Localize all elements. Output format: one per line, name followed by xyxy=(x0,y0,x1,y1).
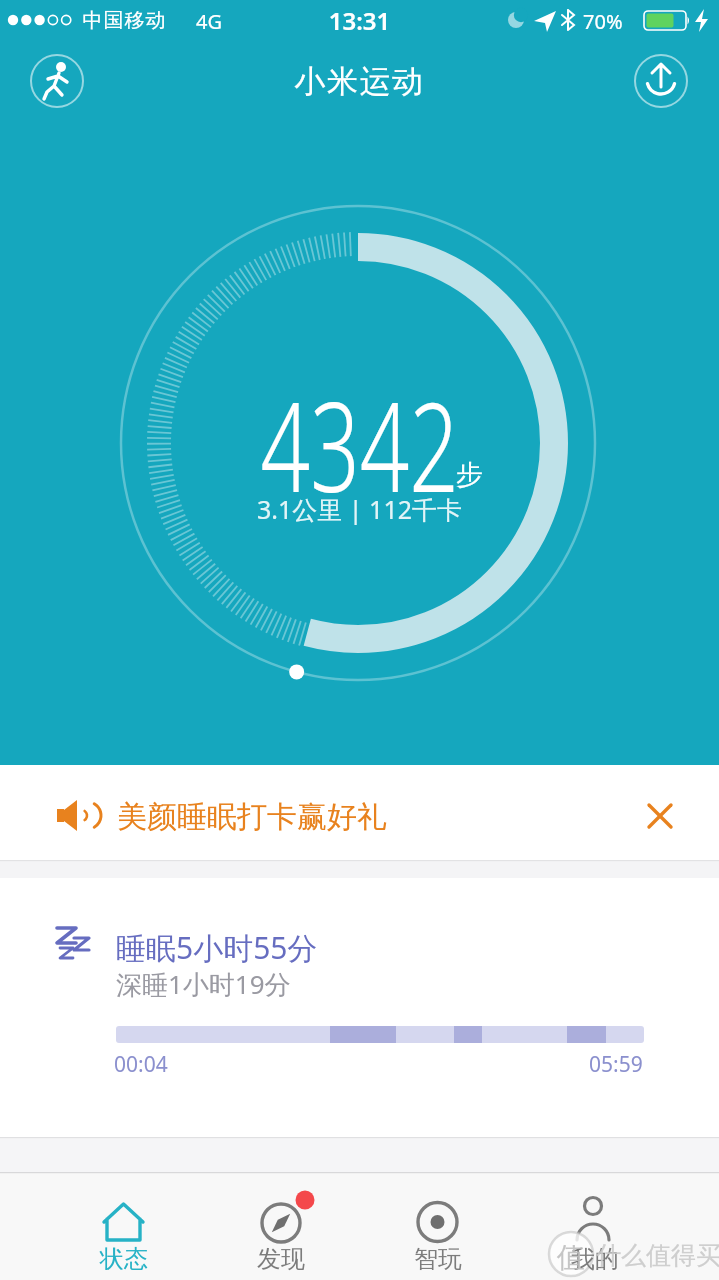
button[interactable] xyxy=(31,55,83,107)
staticText: 05:59 xyxy=(589,1050,643,1079)
staticText: 发现 xyxy=(257,1244,305,1274)
staticText: 4G xyxy=(196,8,222,35)
staticText: 智玩 xyxy=(414,1244,462,1274)
staticText: 4342 xyxy=(261,359,459,528)
staticText: 睡眠5小时55分 xyxy=(116,927,318,968)
staticText: 小米运动 xyxy=(0,62,719,101)
staticText: 13:31 xyxy=(0,4,719,37)
staticText: 美颜睡眠打卡赢好礼 xyxy=(117,798,387,836)
staticText: 我的 xyxy=(571,1244,619,1274)
button[interactable] xyxy=(0,765,719,860)
staticText: 步 xyxy=(456,458,483,492)
staticText: 70% xyxy=(583,8,623,35)
staticText: 状态 xyxy=(100,1244,148,1274)
staticText: 中国移动 xyxy=(82,8,166,33)
button[interactable] xyxy=(211,1174,351,1280)
staticText: 深睡1小时19分 xyxy=(116,966,291,1002)
staticText: 什么值得买 xyxy=(596,1240,719,1271)
button[interactable] xyxy=(368,1174,508,1280)
staticText: 值 xyxy=(557,1240,585,1275)
button[interactable] xyxy=(630,790,684,844)
staticText: 3.1公里 | 112千卡 xyxy=(0,492,719,526)
button[interactable] xyxy=(635,55,687,107)
button[interactable] xyxy=(525,1174,665,1280)
button[interactable] xyxy=(54,1174,194,1280)
staticText: 00:04 xyxy=(114,1050,168,1079)
button[interactable] xyxy=(0,878,719,1137)
